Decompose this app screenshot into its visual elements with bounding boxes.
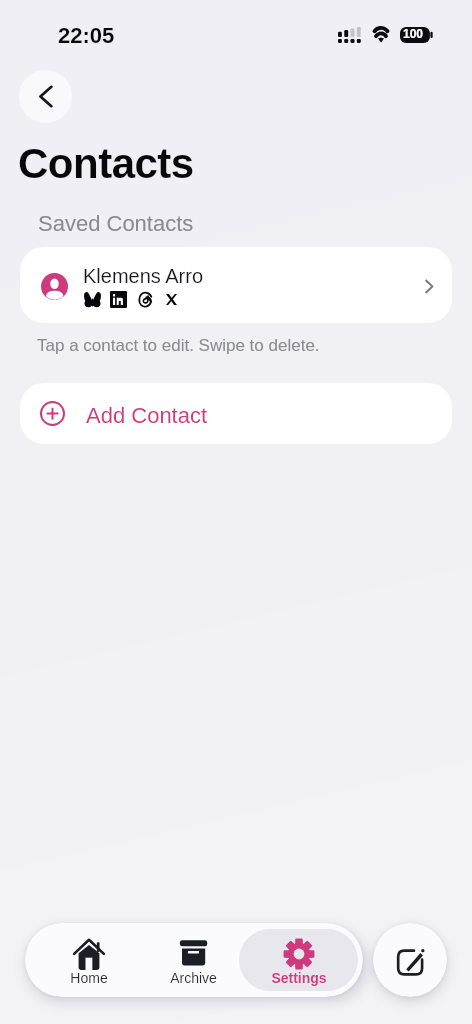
button[interactable]: Settings bbox=[239, 929, 358, 991]
staticText: Add Contact bbox=[86, 403, 208, 428]
button[interactable]: Home bbox=[37, 929, 140, 991]
staticText: 22:05 bbox=[58, 23, 115, 48]
staticText: Contacts bbox=[18, 140, 194, 187]
staticText: Saved Contacts bbox=[38, 211, 194, 236]
staticText: Home bbox=[70, 970, 108, 986]
staticText: Klemens Arro bbox=[83, 265, 204, 287]
button[interactable]: Back bbox=[19, 70, 72, 123]
staticText: Archive bbox=[170, 970, 217, 986]
staticText: Tap a contact to edit. Swipe to delete. bbox=[37, 336, 320, 355]
button[interactable]: Add Contact bbox=[20, 383, 452, 444]
button[interactable]: Klemens Arro bbox=[20, 247, 452, 323]
staticText: Settings bbox=[271, 970, 327, 986]
button[interactable]: Compose new message bbox=[373, 923, 447, 997]
button[interactable]: Archive bbox=[142, 929, 245, 991]
staticText: 100 bbox=[403, 27, 424, 40]
